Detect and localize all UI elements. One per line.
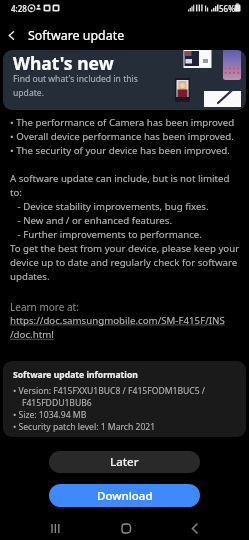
- button[interactable]: What's new: [3, 50, 246, 110]
- button[interactable]: Back: [0, 24, 22, 46]
- staticText: Learn more at:: [10, 300, 79, 314]
- staticText: • The performance of Camera has been imp…: [10, 116, 240, 283]
- button[interactable]: Download: [49, 484, 200, 507]
- staticText: What's new: [13, 51, 114, 75]
- staticText: • Version: F415FXXU1BUC8 / F415FODM1BUC5…: [13, 385, 206, 433]
- button[interactable]: Recent apps: [39, 513, 73, 540]
- staticText: Find out what's included in this update.: [13, 73, 138, 99]
- staticText: Later: [110, 454, 139, 470]
- button[interactable]: https://doc.samsungmobile.com/SM-F415F/I…: [10, 314, 225, 341]
- button[interactable]: Later: [49, 451, 200, 473]
- staticText: 4:28: [11, 3, 27, 14]
- button[interactable]: Home: [109, 513, 143, 540]
- staticText: Software update information: [13, 369, 138, 381]
- button[interactable]: Back: [178, 513, 212, 540]
- staticText: Download: [97, 488, 153, 504]
- staticText: 56%: [219, 3, 235, 14]
- staticText: Software update: [28, 27, 125, 44]
